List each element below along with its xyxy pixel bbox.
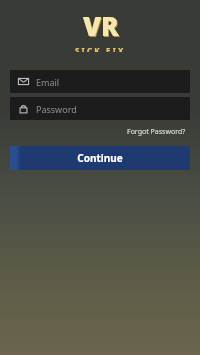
staticText: VR	[83, 8, 119, 43]
staticText: VR	[84, 9, 120, 44]
staticText: Continue	[77, 151, 123, 165]
button[interactable]: Email	[10, 70, 190, 93]
staticText: Forgot Password?	[127, 127, 186, 137]
button[interactable]: Forgot Password?	[125, 125, 188, 139]
staticText: Email	[36, 76, 60, 88]
button[interactable]: Password	[10, 97, 190, 120]
staticText: SICK FIX	[75, 45, 126, 52]
staticText: Password	[36, 103, 77, 115]
button[interactable]: Continue	[10, 146, 190, 170]
